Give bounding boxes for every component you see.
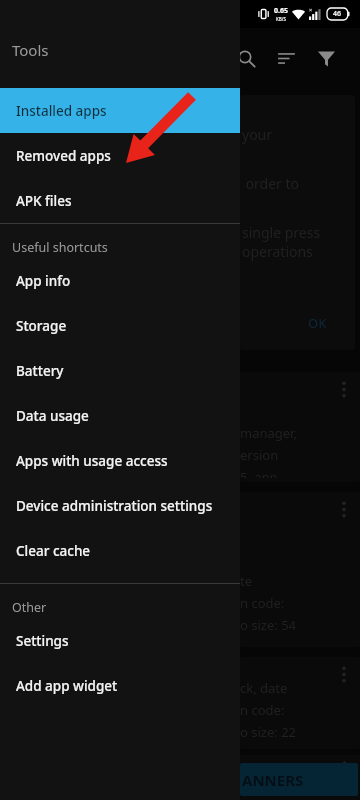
staticText: KB/S (276, 16, 286, 22)
staticText: OK (308, 314, 327, 332)
staticText: ersion (240, 446, 279, 464)
staticText: Settings (16, 632, 69, 650)
staticText: Storage (16, 317, 67, 335)
staticText: o size: 22 (240, 723, 297, 741)
button[interactable]: Battery (0, 348, 240, 393)
button[interactable]: Removed apps (0, 133, 240, 178)
button[interactable]: Device administration settings (0, 483, 240, 528)
button[interactable]: Settings (0, 618, 240, 663)
staticText: Tools (12, 40, 49, 60)
staticText: Apps with usage access (16, 452, 168, 470)
staticText: n code: (240, 594, 285, 612)
button[interactable]: Add app widget (0, 663, 240, 708)
staticText: manager, (240, 424, 297, 442)
staticText: Removed apps (16, 147, 111, 165)
button[interactable]: Filter (306, 38, 346, 78)
button[interactable]: Installed apps (0, 88, 240, 133)
staticText: Battery (16, 362, 64, 380)
staticText: te (240, 572, 253, 590)
staticText: n code: (240, 701, 285, 719)
staticText: Add app widget (16, 677, 118, 695)
staticText: Clear cache (16, 542, 91, 560)
staticText: 5, app (240, 468, 278, 478)
button[interactable]: Apps with usage access (0, 438, 240, 483)
staticText: Data usage (16, 407, 89, 425)
button[interactable]: Storage (0, 303, 240, 348)
button[interactable]: Search (226, 38, 266, 78)
staticText: ANNERS (242, 770, 304, 790)
button[interactable]: Data usage (0, 393, 240, 438)
staticText: your (242, 125, 273, 144)
staticText: o size: 54 (240, 616, 297, 634)
button[interactable]: Clear cache (0, 528, 240, 573)
staticText: single press (242, 223, 321, 242)
button[interactable]: OK (308, 314, 327, 332)
button[interactable]: ck, date (240, 657, 360, 749)
button[interactable]: APK files (0, 178, 240, 223)
staticText: Device administration settings (16, 497, 213, 515)
staticText: Other (12, 599, 47, 616)
staticText: 0.65 (274, 6, 288, 16)
button[interactable]: Sort (266, 38, 306, 78)
staticText: operations (242, 242, 313, 261)
button[interactable]: ANNERS (240, 763, 358, 796)
staticText: order to (242, 174, 300, 193)
staticText: APK files (16, 192, 72, 210)
staticText: 46 (333, 9, 342, 19)
staticText: Installed apps (16, 102, 107, 120)
staticText: App info (16, 272, 71, 290)
staticText: ck, date (240, 679, 288, 697)
button[interactable]: App info (0, 258, 240, 303)
staticText: Useful shortcuts (12, 239, 108, 256)
